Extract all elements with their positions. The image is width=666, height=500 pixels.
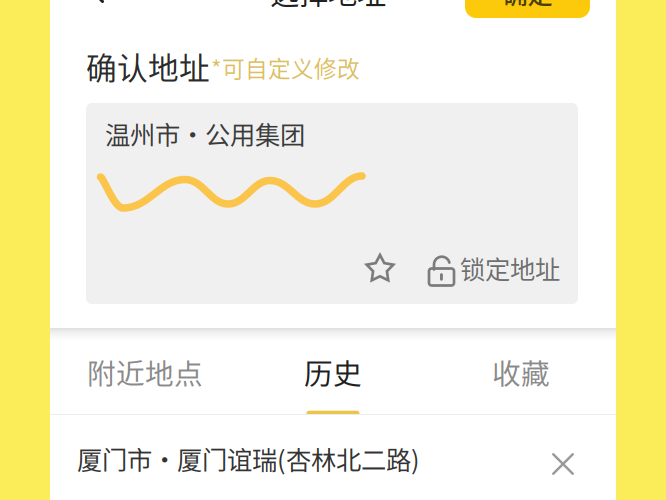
- staticText: *可自定义修改: [211, 51, 360, 84]
- staticText: 选择地址: [270, 0, 386, 12]
- staticText: 收藏: [492, 351, 550, 393]
- staticText: 确认地址: [86, 44, 210, 88]
- button[interactable]: 厦门市・厦门谊瑞(杏林北二路): [50, 415, 616, 500]
- button[interactable]: 历史: [239, 330, 427, 414]
- staticText: 厦门市・厦门谊瑞(杏林北二路): [77, 440, 420, 477]
- button[interactable]: 附近地点: [51, 330, 239, 414]
- staticText: 附近地点: [87, 351, 203, 393]
- button[interactable]: 确定: [465, 0, 590, 18]
- staticText: 锁定地址: [460, 250, 560, 286]
- button[interactable]: 收藏: [427, 330, 615, 414]
- staticText: 历史: [304, 351, 362, 393]
- staticText: 温州市・公用集团: [105, 115, 305, 152]
- button[interactable]: Back: [83, 0, 113, 14]
- staticText: 确定: [502, 0, 552, 11]
- button[interactable]: 锁定地址: [429, 246, 560, 290]
- button[interactable]: Favourite: [358, 247, 402, 291]
